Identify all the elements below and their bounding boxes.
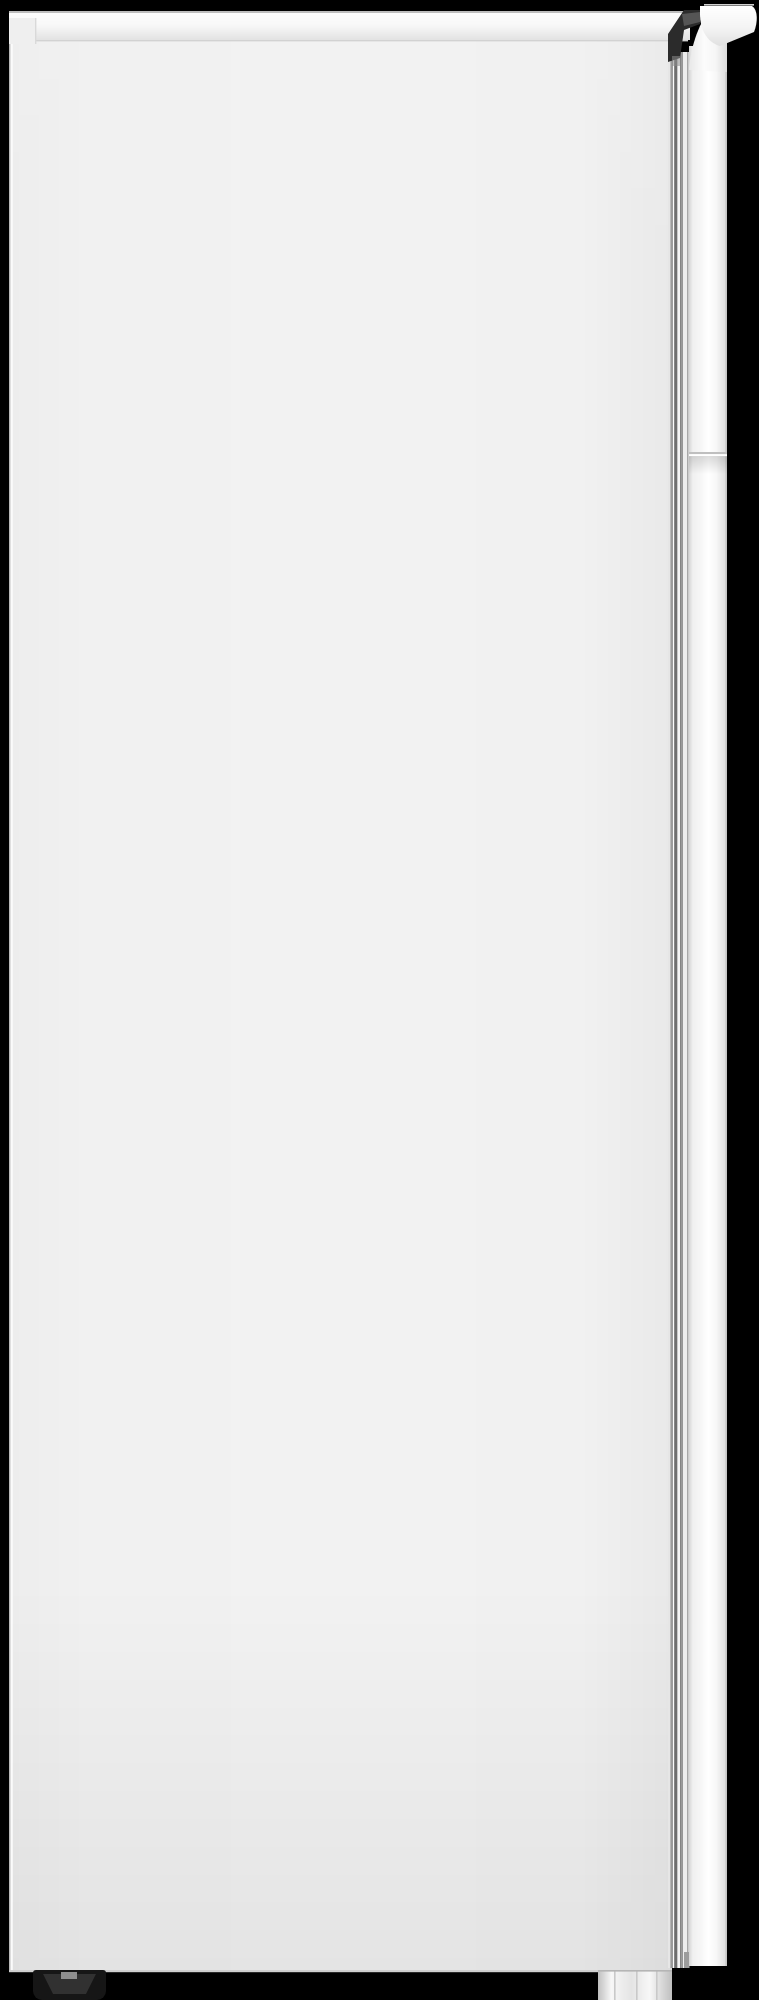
- button[interactable]: White top-freezer refrigerator product p…: [0, 0, 759, 2000]
